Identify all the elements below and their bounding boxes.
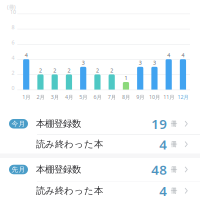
staticText: 6 [11, 39, 14, 46]
staticText: 4 [11, 54, 14, 61]
staticText: 0 [11, 84, 14, 92]
staticText: 4 [167, 52, 170, 59]
staticText: 冊 [171, 187, 178, 195]
staticText: 3 [139, 59, 142, 66]
staticText: 4 [181, 52, 184, 59]
staticText: 3月 [51, 93, 59, 101]
staticText: 4月 [65, 93, 73, 101]
staticText: 48 [151, 161, 167, 178]
staticText: 読み終わった本 [36, 138, 103, 150]
staticText: 先月 [11, 165, 25, 174]
button[interactable]: 先月 [0, 158, 200, 181]
staticText: 10月 [149, 93, 160, 101]
staticText: 3 [82, 59, 85, 66]
staticText: 2月 [36, 93, 44, 101]
staticText: 6月 [93, 93, 101, 101]
staticText: 読み終わった本 [36, 185, 103, 196]
staticText: 19 [151, 115, 167, 133]
staticText: 4 [159, 135, 167, 153]
staticText: 2 [39, 67, 42, 74]
staticText: 4 [159, 182, 167, 200]
staticText: 2 [110, 67, 113, 74]
staticText: 9月 [136, 93, 144, 101]
staticText: 2 [67, 67, 70, 74]
staticText: 1月 [22, 93, 30, 101]
staticText: 今月 [11, 120, 25, 128]
staticText: 2 [11, 69, 14, 76]
staticText: 12月 [177, 93, 188, 101]
staticText: (冊) [7, 3, 16, 11]
button[interactable]: 読み終わった本 [0, 181, 200, 200]
staticText: 冊 [171, 165, 178, 174]
staticText: 4 [25, 52, 28, 59]
button[interactable]: 今月 [0, 113, 200, 134]
staticText: 5月 [79, 93, 87, 101]
staticText: 8 [11, 24, 14, 31]
staticText: 3 [153, 59, 156, 66]
staticText: 2 [96, 67, 99, 74]
staticText: 10 [10, 8, 16, 16]
staticText: 冊 [171, 120, 178, 128]
staticText: 2 [53, 67, 56, 74]
button[interactable]: 読み終わった本 [0, 135, 200, 153]
staticText: 11月 [163, 93, 174, 101]
staticText: 1 [124, 74, 127, 82]
staticText: 7月 [108, 93, 116, 101]
staticText: 冊 [171, 140, 178, 148]
staticText: 8月 [122, 93, 130, 101]
staticText: 本棚登録数 [36, 118, 81, 129]
staticText: 本棚登録数 [36, 164, 81, 175]
